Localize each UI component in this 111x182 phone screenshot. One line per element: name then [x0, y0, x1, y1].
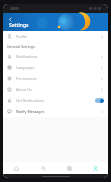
button[interactable]: Back [5, 14, 15, 24]
button[interactable]: Notify Messages [3, 106, 108, 117]
button[interactable]: About Us [3, 84, 108, 95]
button[interactable]: Profile [3, 31, 108, 42]
staticText: Profile [16, 34, 100, 39]
button[interactable]: Get Notifications [3, 95, 108, 106]
button[interactable]: Notifications [3, 51, 108, 62]
staticText: About Us [16, 87, 100, 92]
button[interactable]: Profile [82, 162, 108, 174]
staticText: Languages [16, 65, 100, 70]
staticText: Permissions [16, 76, 100, 81]
button[interactable]: Home [3, 162, 30, 174]
button[interactable]: Toggle [95, 98, 104, 103]
staticText: Settings [9, 22, 29, 29]
staticText: Notify Messages [16, 109, 100, 114]
staticText: General Settings [7, 44, 35, 49]
button[interactable]: Search [30, 162, 56, 174]
staticText: Notifications [16, 54, 100, 59]
button[interactable]: Permissions [3, 73, 108, 84]
staticText: Get Notifications [16, 98, 95, 103]
button[interactable]: Languages [3, 62, 108, 73]
button[interactable]: Apps [56, 162, 82, 174]
